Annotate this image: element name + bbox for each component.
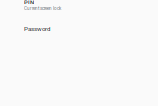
staticText: Password: [24, 25, 50, 32]
staticText: Current screen lock: [24, 6, 61, 11]
button[interactable]: Password: [0, 25, 158, 32]
button[interactable]: PIN: [0, 0, 158, 11]
staticText: PIN: [24, 0, 34, 6]
